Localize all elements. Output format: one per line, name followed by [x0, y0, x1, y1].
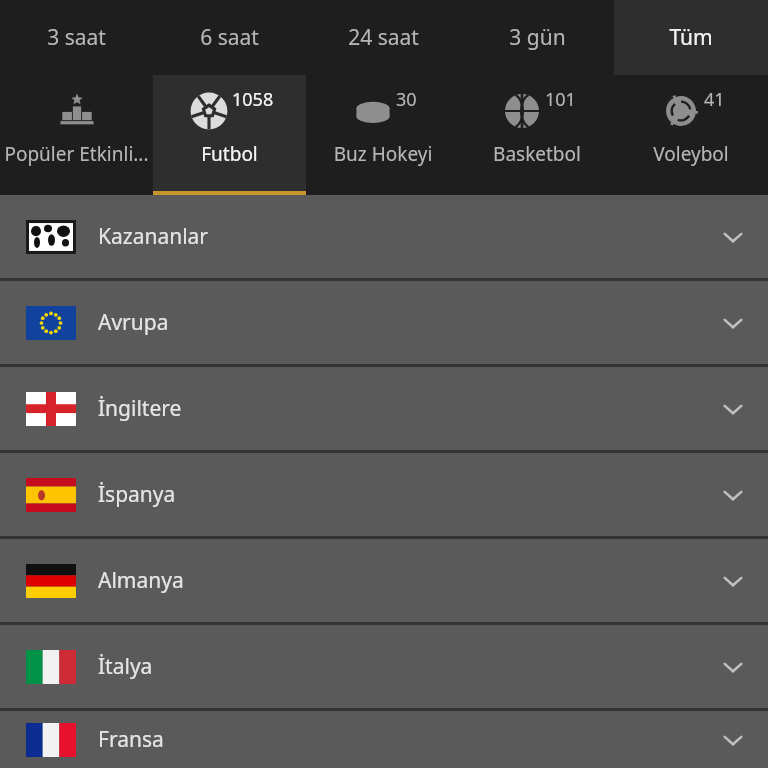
staticText: 30: [396, 87, 417, 112]
button[interactable]: 6 saat: [153, 0, 306, 75]
button[interactable]: 3 saat: [0, 0, 153, 75]
staticText: 3 gün: [509, 23, 566, 52]
staticText: 6 saat: [200, 23, 259, 52]
button[interactable]: 24 saat: [306, 0, 460, 75]
staticText: İspanya: [98, 480, 698, 509]
staticText: 41: [704, 87, 725, 112]
button[interactable]: 1058: [153, 75, 306, 195]
staticText: İngiltere: [98, 394, 698, 423]
staticText: Fransa: [98, 725, 698, 754]
button[interactable]: Expand İspanya: [698, 453, 768, 536]
button[interactable]: Expand Fransa: [698, 711, 768, 768]
staticText: 24 saat: [348, 23, 419, 52]
staticText: Futbol: [155, 141, 304, 167]
button[interactable]: Kazananlar: [0, 195, 768, 278]
button[interactable]: 3 gün: [460, 0, 614, 75]
button[interactable]: Fransa: [0, 711, 768, 768]
staticText: Voleybol: [616, 141, 766, 167]
button[interactable]: Almanya: [0, 539, 768, 622]
button[interactable]: İtalya: [0, 625, 768, 708]
button[interactable]: Expand Kazananlar: [698, 195, 768, 278]
button[interactable]: İngiltere: [0, 367, 768, 450]
staticText: Kazananlar: [98, 222, 698, 251]
button[interactable]: Tüm: [614, 0, 768, 75]
button[interactable]: Expand Avrupa: [698, 281, 768, 364]
button[interactable]: Expand İtalya: [698, 625, 768, 708]
staticText: 101: [545, 87, 576, 112]
staticText: İtalya: [98, 652, 698, 681]
button[interactable]: 30: [306, 75, 460, 195]
button[interactable]: Popüler Etkinli...: [0, 75, 153, 195]
staticText: Avrupa: [98, 308, 698, 337]
button[interactable]: Expand İngiltere: [698, 367, 768, 450]
staticText: Popüler Etkinli...: [2, 141, 151, 167]
button[interactable]: Avrupa: [0, 281, 768, 364]
button[interactable]: Expand Almanya: [698, 539, 768, 622]
button[interactable]: 41: [614, 75, 768, 195]
staticText: Almanya: [98, 566, 698, 595]
staticText: 1058: [232, 87, 274, 112]
button[interactable]: İspanya: [0, 453, 768, 536]
button[interactable]: 101: [460, 75, 614, 195]
staticText: 3 saat: [47, 23, 106, 52]
staticText: Tüm: [669, 23, 713, 52]
staticText: Basketbol: [462, 141, 612, 167]
staticText: Buz Hokeyi: [308, 141, 458, 167]
